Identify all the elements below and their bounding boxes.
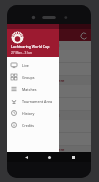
staticText: Groups <box>22 75 35 80</box>
button[interactable] <box>7 133 91 145</box>
button[interactable] <box>7 50 91 62</box>
button[interactable]: Stage Nowhere <box>7 76 91 85</box>
button[interactable] <box>7 120 91 132</box>
staticText: Stage Nowhere <box>34 78 65 83</box>
staticText: Matches <box>22 87 37 92</box>
button[interactable]: History <box>7 107 59 119</box>
button[interactable]: Credits <box>7 119 59 131</box>
button[interactable]: Luchtvaring World Cup 2017 <box>7 29 59 57</box>
button[interactable] <box>7 85 91 97</box>
button[interactable]: Home <box>44 152 54 162</box>
staticText: Stage 2/01 <box>39 113 60 118</box>
button[interactable]: Recents <box>68 152 78 162</box>
button[interactable]: Stage 2/01 <box>7 41 91 50</box>
button[interactable]: Groups <box>7 71 59 83</box>
button[interactable] <box>7 63 91 75</box>
staticText: Credits <box>22 123 35 128</box>
button[interactable]: Live <box>7 59 59 71</box>
button[interactable]: Back <box>21 152 31 162</box>
staticText: Live <box>22 63 29 68</box>
button[interactable]: Matches <box>7 83 59 95</box>
button[interactable] <box>7 98 91 110</box>
button[interactable]: Stage 2/01 <box>7 111 91 120</box>
staticText: Stage 2/01 <box>39 43 60 48</box>
staticText: Tournament Area <box>22 99 52 104</box>
staticText: 27 May - 3 Jun <box>11 51 32 54</box>
button[interactable]: Stage Nowhere <box>7 146 91 152</box>
button[interactable]: Refresh <box>79 31 88 40</box>
staticText: Luchtvaring World Cup 2017 <box>11 44 56 49</box>
button[interactable]: Tournament Area <box>7 95 59 107</box>
staticText: History <box>22 111 35 116</box>
staticText: Stage Nowhere <box>34 147 65 152</box>
